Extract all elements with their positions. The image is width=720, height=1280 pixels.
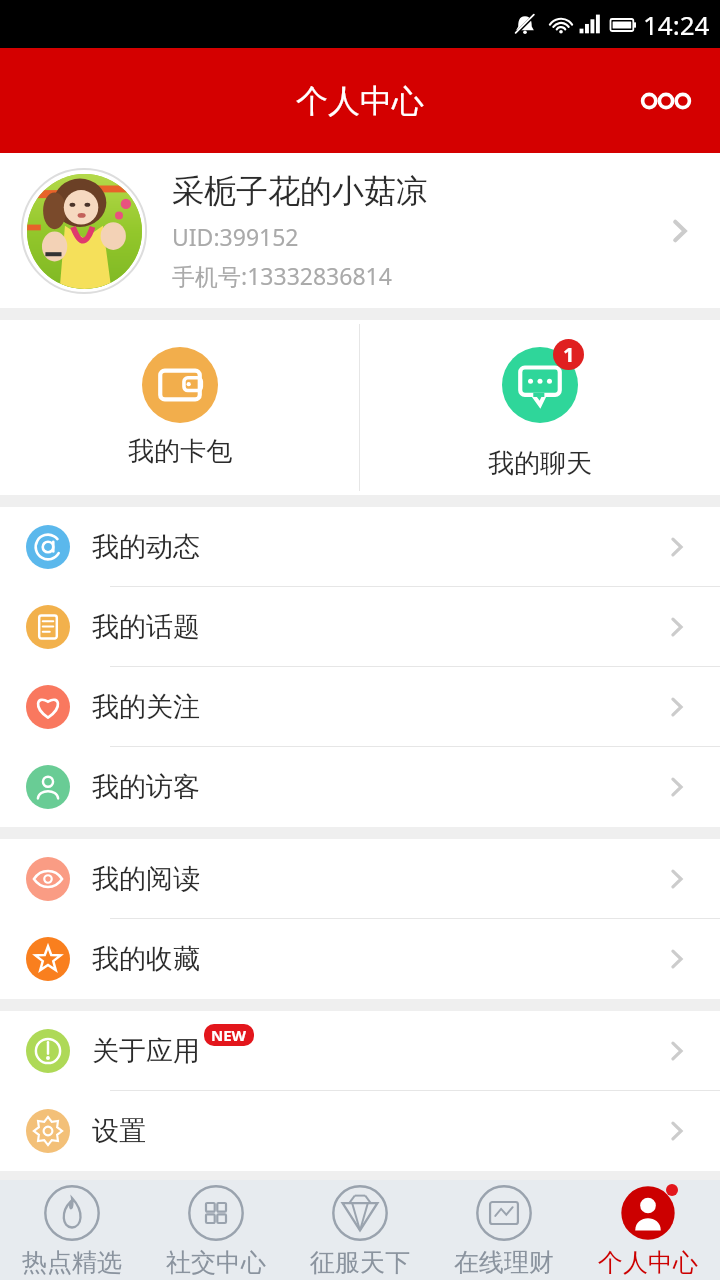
button[interactable]: 我的访客 [0,747,720,827]
button[interactable]: 我的话题 [0,587,720,667]
staticText: UID:399152 [172,221,299,252]
staticText: 1 [563,341,575,368]
staticText: 设置 [92,1114,146,1148]
button[interactable]: 我的收藏 [0,919,720,999]
staticText: 关于应用 [92,1034,200,1068]
staticText: 我的聊天 [488,447,592,480]
button[interactable]: 个人中心 [576,1180,720,1280]
button[interactable]: 设置 [0,1091,720,1171]
staticText: 热点精选 [22,1247,122,1278]
staticText: 我的访客 [92,770,200,804]
staticText: 我的动态 [92,530,200,564]
button[interactable]: 我的动态 [0,507,720,587]
staticText: 我的卡包 [128,435,232,468]
button[interactable]: 关于应用 [0,1011,720,1091]
button[interactable]: 在线理财 [432,1180,576,1280]
staticText: 社交中心 [166,1247,266,1278]
button[interactable]: 社交中心 [144,1180,288,1280]
staticText: 手机号:13332836814 [172,260,392,291]
staticText: 我的阅读 [92,862,200,896]
button[interactable]: 我的关注 [0,667,720,747]
staticText: 在线理财 [454,1247,554,1278]
button[interactable]: 1 [360,320,720,495]
staticText: NEW [211,1025,247,1045]
button[interactable]: 我的卡包 [0,320,359,495]
staticText: 征服天下 [310,1247,410,1278]
button[interactable]: 热点精选 [0,1180,144,1280]
staticText: 我的话题 [92,610,200,644]
staticText: 我的收藏 [92,942,200,976]
button[interactable]: 采栀子花的小菇凉 [0,153,720,308]
staticText: 我的关注 [92,690,200,724]
staticText: 个人中心 [598,1247,698,1278]
button[interactable]: 我的阅读 [0,839,720,919]
staticText: 采栀子花的小菇凉 [172,171,428,211]
button[interactable]: More options [634,69,698,133]
button[interactable]: 征服天下 [288,1180,432,1280]
staticText: 个人中心 [296,81,424,121]
staticText: 14:24 [643,7,710,42]
